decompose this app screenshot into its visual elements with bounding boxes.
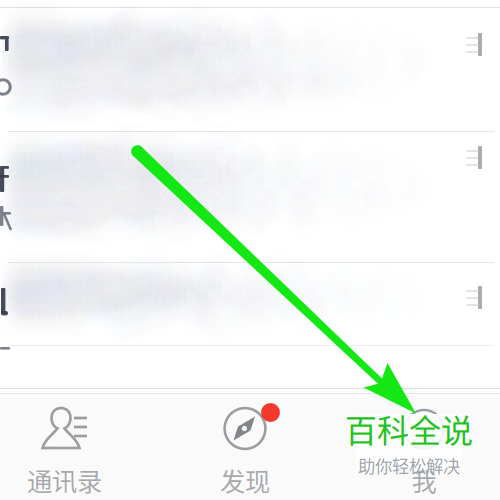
staticText: 百科全说	[345, 405, 473, 452]
button[interactable]: 发现	[161, 393, 329, 500]
button[interactable]: 通讯录	[0, 393, 148, 500]
button[interactable]: 我	[340, 393, 500, 500]
staticText: 发现	[220, 461, 270, 498]
staticText: 助你轻松解决	[358, 453, 460, 478]
staticText: 我	[411, 461, 436, 498]
staticText: 通讯录	[27, 461, 102, 498]
